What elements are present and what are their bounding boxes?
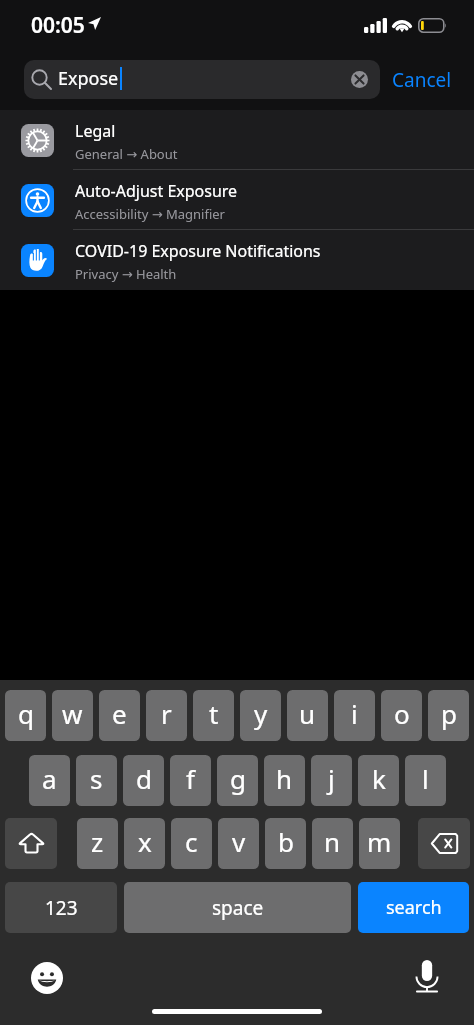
staticText: j: [328, 761, 335, 796]
button[interactable]: Delete: [418, 818, 470, 869]
staticText: w: [62, 696, 83, 731]
button[interactable]: 123: [5, 882, 117, 933]
button[interactable]: i: [334, 690, 375, 741]
button[interactable]: z: [77, 818, 118, 869]
button[interactable]: g: [217, 755, 258, 806]
button[interactable]: c: [171, 818, 212, 869]
button[interactable]: Shift: [5, 818, 57, 869]
button[interactable]: COVID-19 Exposure Notifications: [0, 230, 474, 290]
button[interactable]: m: [359, 818, 400, 869]
button[interactable]: Emoji keyboard: [31, 962, 63, 994]
button[interactable]: b: [265, 818, 306, 869]
button[interactable]: Expose: [24, 60, 380, 99]
staticText: m: [367, 824, 392, 859]
staticText: x: [138, 824, 152, 859]
staticText: s: [90, 761, 103, 796]
staticText: Privacy → Health: [75, 265, 177, 283]
button[interactable]: h: [264, 755, 305, 806]
staticText: l: [422, 761, 429, 796]
staticText: z: [91, 824, 104, 859]
staticText: h: [276, 761, 293, 796]
button[interactable]: s: [76, 755, 117, 806]
staticText: Accessibility → Magnifier: [75, 205, 225, 223]
staticText: e: [112, 696, 127, 731]
button[interactable]: v: [218, 818, 259, 869]
button[interactable]: n: [312, 818, 353, 869]
button[interactable]: j: [311, 755, 352, 806]
button[interactable]: p: [428, 690, 469, 741]
button[interactable]: o: [381, 690, 422, 741]
button[interactable]: l: [405, 755, 446, 806]
button[interactable]: search: [358, 882, 469, 933]
button[interactable]: d: [123, 755, 164, 806]
button[interactable]: Cancel: [386, 61, 458, 99]
button[interactable]: q: [5, 690, 46, 741]
button[interactable]: Clear text: [351, 71, 368, 88]
staticText: v: [232, 824, 246, 859]
button[interactable]: t: [193, 690, 234, 741]
staticText: Auto-Adjust Exposure: [75, 180, 238, 202]
staticText: 00:05: [31, 11, 85, 40]
staticText: q: [18, 696, 34, 731]
button[interactable]: e: [99, 690, 140, 741]
staticText: a: [42, 761, 57, 796]
button[interactable]: r: [146, 690, 187, 741]
button[interactable]: a: [29, 755, 70, 806]
staticText: o: [394, 696, 410, 731]
button[interactable]: Legal: [0, 110, 474, 170]
button[interactable]: Auto-Adjust Exposure: [0, 170, 474, 230]
button[interactable]: space: [124, 882, 351, 933]
staticText: d: [136, 761, 152, 796]
button[interactable]: k: [358, 755, 399, 806]
staticText: u: [299, 696, 316, 731]
button[interactable]: u: [287, 690, 328, 741]
staticText: r: [161, 696, 172, 731]
button[interactable]: x: [124, 818, 165, 869]
staticText: t: [209, 696, 219, 731]
staticText: i: [351, 696, 358, 731]
staticText: g: [230, 761, 246, 796]
staticText: space: [212, 895, 264, 921]
staticText: p: [441, 696, 457, 731]
staticText: Expose: [58, 66, 119, 91]
staticText: search: [386, 895, 442, 920]
staticText: c: [185, 824, 198, 859]
staticText: k: [372, 761, 386, 796]
staticText: Cancel: [392, 67, 452, 93]
staticText: y: [254, 696, 268, 731]
button[interactable]: f: [170, 755, 211, 806]
staticText: COVID-19 Exposure Notifications: [75, 240, 321, 262]
staticText: Legal: [75, 120, 116, 142]
button[interactable]: w: [52, 690, 93, 741]
staticText: f: [186, 761, 195, 796]
staticText: 123: [45, 895, 78, 921]
staticText: General → About: [75, 145, 178, 163]
button[interactable]: y: [240, 690, 281, 741]
staticText: b: [278, 824, 294, 859]
button[interactable]: Dictation: [416, 960, 438, 993]
staticText: n: [324, 824, 341, 859]
